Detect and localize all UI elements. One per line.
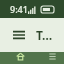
staticText: 9:41 — [10, 3, 28, 15]
button[interactable]: Menu — [8, 24, 30, 46]
button[interactable]: Tasks — [40, 52, 64, 64]
staticText: Today — [36, 27, 56, 43]
button[interactable]: Home — [0, 52, 40, 64]
